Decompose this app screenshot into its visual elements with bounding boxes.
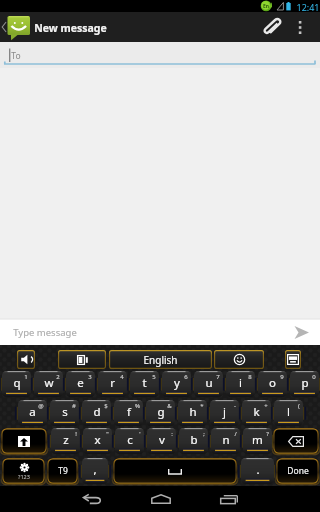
button[interactable]: o bbox=[258, 371, 287, 397]
button[interactable]: m bbox=[243, 428, 272, 454]
button[interactable]: Emoji bbox=[214, 350, 264, 369]
staticText: i bbox=[239, 375, 242, 391]
staticText: v bbox=[159, 432, 165, 448]
staticText: % bbox=[135, 402, 140, 410]
button[interactable]: h bbox=[178, 400, 207, 426]
button[interactable]: n bbox=[211, 428, 240, 454]
staticText: l bbox=[287, 404, 290, 420]
staticText: ? bbox=[266, 430, 269, 438]
button[interactable]: l bbox=[274, 400, 303, 426]
staticText: English bbox=[143, 353, 178, 367]
staticText: @ bbox=[38, 402, 44, 410]
button[interactable]: c bbox=[115, 428, 144, 454]
staticText: 0 bbox=[312, 373, 316, 381]
button[interactable]: x bbox=[83, 428, 112, 454]
staticText: 12:41 bbox=[296, 1, 320, 13]
staticText: u bbox=[205, 375, 213, 391]
button[interactable]: Shift bbox=[1, 428, 47, 454]
button[interactable]: q bbox=[2, 371, 31, 397]
staticText: 6 bbox=[184, 373, 188, 381]
staticText: q bbox=[13, 375, 21, 391]
staticText: $ bbox=[104, 402, 108, 410]
button[interactable]: r bbox=[98, 371, 127, 397]
button[interactable]: d bbox=[82, 400, 111, 426]
button[interactable]: Language bbox=[109, 350, 212, 369]
button[interactable]: Home bbox=[143, 486, 178, 512]
button[interactable]: Attach bbox=[256, 12, 286, 42]
staticText: ! bbox=[75, 430, 77, 438]
staticText: z bbox=[63, 432, 69, 448]
staticText: 2 bbox=[56, 373, 60, 381]
button[interactable]: t bbox=[130, 371, 159, 397]
button[interactable]: Space bbox=[113, 458, 237, 484]
button[interactable]: p bbox=[290, 371, 319, 397]
button[interactable]: e bbox=[66, 371, 95, 397]
button[interactable]: Symbols bbox=[2, 458, 45, 484]
staticText: ' bbox=[139, 430, 141, 438]
staticText: r bbox=[110, 375, 115, 391]
staticText: w bbox=[44, 375, 54, 391]
button[interactable]: Backspace bbox=[273, 428, 319, 454]
staticText: d bbox=[93, 404, 101, 420]
button[interactable]: Clipboard bbox=[58, 350, 106, 369]
staticText: p bbox=[301, 375, 309, 391]
staticText: " bbox=[106, 430, 109, 438]
button[interactable]: New message bbox=[0, 12, 320, 42]
staticText: 5 bbox=[152, 373, 156, 381]
staticText: 9 bbox=[280, 373, 284, 381]
staticText: En bbox=[262, 3, 270, 10]
staticText: c bbox=[127, 432, 133, 448]
staticText: & bbox=[167, 402, 172, 410]
button[interactable]: b bbox=[179, 428, 208, 454]
button[interactable]: i bbox=[226, 371, 255, 397]
button[interactable]: z bbox=[51, 428, 80, 454]
button[interactable]: j bbox=[210, 400, 239, 426]
button[interactable]: g bbox=[146, 400, 175, 426]
staticText: o bbox=[269, 375, 276, 391]
staticText: Done bbox=[287, 465, 309, 477]
staticText: / bbox=[234, 430, 237, 438]
button[interactable]: f bbox=[114, 400, 143, 426]
staticText: Type message bbox=[13, 326, 77, 339]
staticText: ; bbox=[203, 430, 205, 438]
button[interactable]: Voice input bbox=[17, 350, 35, 369]
staticText: To bbox=[11, 50, 21, 62]
staticText: : bbox=[171, 430, 173, 438]
button[interactable]: s bbox=[50, 400, 79, 426]
button[interactable]: k bbox=[242, 400, 271, 426]
staticText: ?123 bbox=[18, 473, 30, 480]
staticText: - bbox=[234, 402, 236, 410]
button[interactable]: w bbox=[34, 371, 63, 397]
staticText: g bbox=[157, 404, 165, 420]
staticText: T9 bbox=[58, 465, 68, 477]
button[interactable]: Recent apps bbox=[211, 486, 246, 512]
staticText: j bbox=[223, 404, 226, 420]
button[interactable]: a bbox=[18, 400, 47, 426]
button[interactable]: Hide keyboard bbox=[285, 350, 301, 369]
button[interactable]: Send bbox=[288, 319, 314, 345]
button[interactable]: y bbox=[162, 371, 191, 397]
button[interactable]: , bbox=[82, 458, 108, 484]
staticText: * bbox=[200, 402, 204, 410]
staticText: a bbox=[29, 404, 36, 420]
staticText: 4 bbox=[120, 373, 124, 381]
button[interactable]: T9 bbox=[47, 458, 78, 484]
button[interactable]: . bbox=[241, 458, 274, 484]
staticText: h bbox=[189, 404, 197, 420]
button[interactable]: u bbox=[194, 371, 223, 397]
staticText: 8 bbox=[248, 373, 252, 381]
staticText: # bbox=[72, 402, 76, 410]
staticText: f bbox=[127, 404, 131, 420]
staticText: e bbox=[77, 375, 84, 391]
staticText: New message bbox=[34, 21, 107, 35]
staticText: , bbox=[93, 462, 97, 478]
button[interactable]: More options bbox=[289, 12, 311, 42]
staticText: 1 bbox=[24, 373, 28, 381]
button[interactable]: v bbox=[147, 428, 176, 454]
button[interactable]: Back bbox=[74, 486, 109, 512]
staticText: s bbox=[62, 404, 68, 420]
staticText: m bbox=[252, 432, 263, 448]
staticText: n bbox=[222, 432, 230, 448]
staticText: y bbox=[174, 375, 180, 391]
button[interactable]: Done bbox=[276, 458, 319, 484]
